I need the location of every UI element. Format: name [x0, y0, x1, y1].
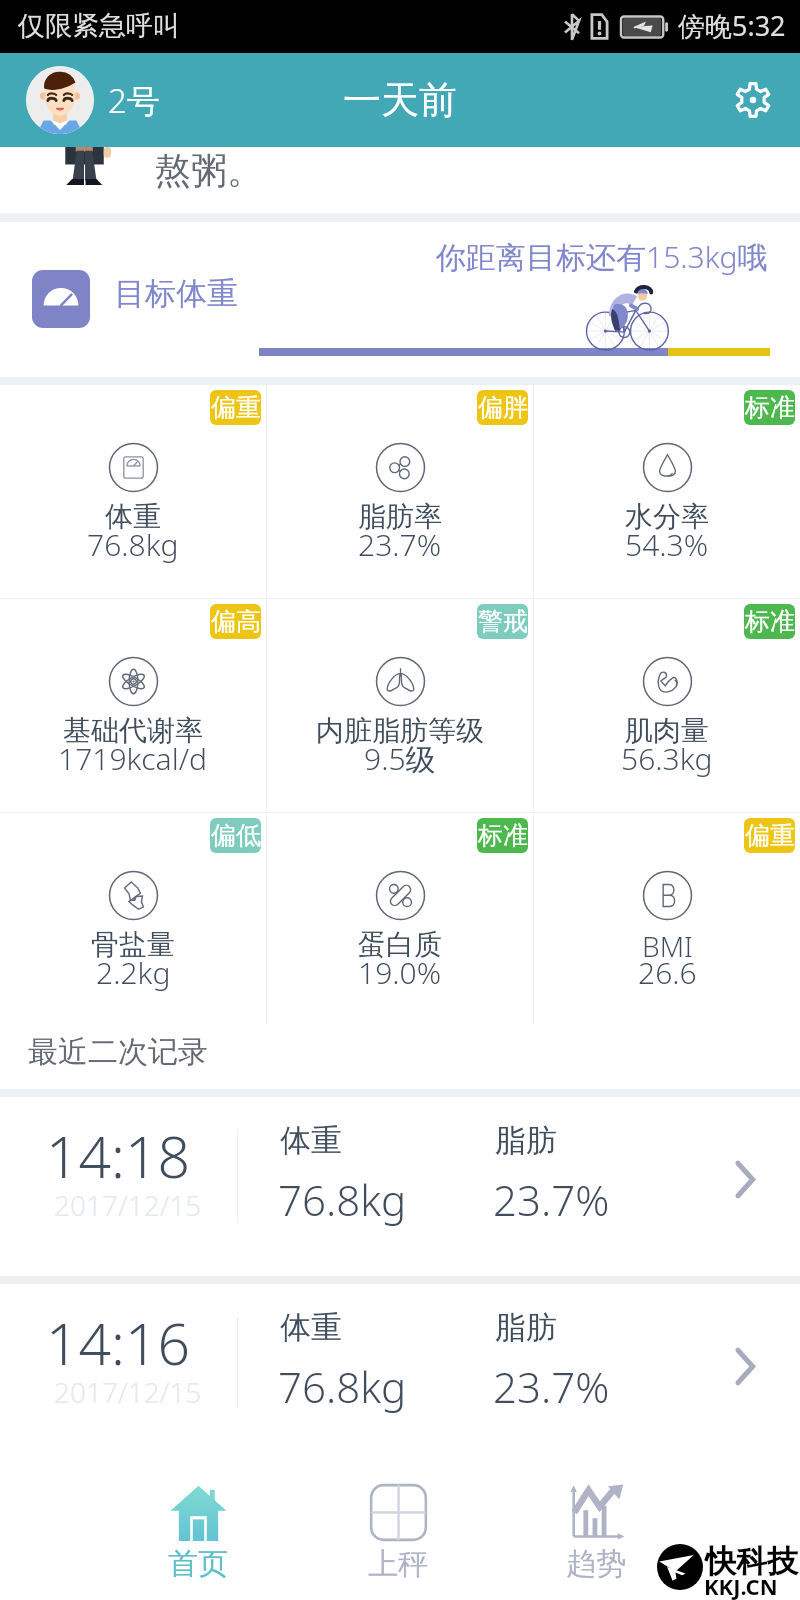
- button[interactable]: 上秤: [338, 1484, 458, 1583]
- staticText: 76.8kg: [87, 524, 179, 565]
- staticText: 23.7%: [358, 524, 442, 565]
- staticText: 14:18: [46, 1117, 191, 1195]
- button[interactable]: 标准: [534, 385, 800, 598]
- staticText: 2017/12/15: [54, 1186, 202, 1224]
- staticText: 54.3%: [625, 524, 709, 565]
- button[interactable]: 14:16: [3, 1284, 797, 1460]
- staticText: 偏重: [745, 820, 795, 851]
- staticText: 23.7%: [493, 1358, 610, 1415]
- button[interactable]: 偏低: [0, 813, 266, 1025]
- staticText: 2号: [108, 78, 160, 123]
- staticText: 脂肪: [495, 1121, 557, 1160]
- button[interactable]: 首页: [138, 1484, 258, 1583]
- staticText: 肌肉量: [625, 713, 709, 748]
- staticText: 目标体重: [114, 274, 238, 313]
- staticText: 26.6: [638, 952, 697, 993]
- staticText: 9.5级: [364, 738, 436, 779]
- staticText: 快科技: [705, 1542, 798, 1581]
- staticText: 骨盐量: [91, 927, 175, 962]
- staticText: 上秤: [368, 1545, 428, 1583]
- staticText: 1719kcal/d: [58, 738, 208, 779]
- staticText: 76.8kg: [278, 1171, 407, 1228]
- staticText: 一天前: [343, 76, 457, 124]
- staticText: 水分率: [625, 499, 709, 534]
- staticText: 基础代谢率: [63, 713, 203, 748]
- staticText: 仅限紧急呼叫: [18, 9, 180, 43]
- staticText: 脂肪: [495, 1308, 557, 1347]
- staticText: 趋势: [566, 1545, 626, 1583]
- staticText: 熬粥。: [155, 148, 263, 193]
- staticText: 标准: [478, 820, 528, 851]
- staticText: KKJ.CN: [704, 1571, 778, 1600]
- button[interactable]: 2号: [26, 66, 160, 134]
- staticText: 傍晚5:32: [678, 7, 786, 44]
- button[interactable]: 趋势: [536, 1484, 656, 1583]
- staticText: 首页: [168, 1545, 228, 1583]
- staticText: 体重: [280, 1308, 342, 1347]
- staticText: 脂肪率: [358, 499, 442, 534]
- staticText: 56.3kg: [621, 738, 713, 779]
- staticText: 76.8kg: [278, 1358, 407, 1415]
- staticText: 你距离目标还有15.3kg哦: [436, 236, 768, 277]
- staticText: 内脏脂肪等级: [316, 713, 484, 748]
- staticText: 2017/12/15: [54, 1373, 202, 1411]
- staticText: 2.2kg: [96, 952, 171, 993]
- staticText: 偏低: [211, 820, 261, 851]
- staticText: 标准: [745, 392, 795, 423]
- button[interactable]: Settings: [725, 72, 781, 128]
- staticText: 19.0%: [358, 952, 442, 993]
- staticText: 23.7%: [493, 1171, 610, 1228]
- staticText: BMI: [642, 927, 693, 965]
- staticText: 体重: [280, 1121, 342, 1160]
- staticText: 偏胖: [478, 392, 528, 423]
- staticText: 偏高: [211, 606, 261, 637]
- staticText: 体重: [105, 499, 161, 534]
- staticText: 偏重: [211, 392, 261, 423]
- button[interactable]: 偏重: [534, 813, 800, 1025]
- staticText: 标准: [745, 606, 795, 637]
- button[interactable]: 标准: [267, 813, 533, 1025]
- button[interactable]: 偏高: [0, 599, 266, 812]
- button[interactable]: 目标体重: [0, 222, 800, 377]
- button[interactable]: 14:18: [3, 1097, 797, 1276]
- button[interactable]: 警戒: [267, 599, 533, 812]
- button[interactable]: 偏胖: [267, 385, 533, 598]
- button[interactable]: 标准: [534, 599, 800, 812]
- staticText: 最近二次记录: [28, 1033, 208, 1071]
- staticText: 警戒: [478, 606, 528, 637]
- staticText: 蛋白质: [358, 927, 442, 962]
- staticText: 14:16: [46, 1304, 191, 1382]
- button[interactable]: 偏重: [0, 385, 266, 598]
